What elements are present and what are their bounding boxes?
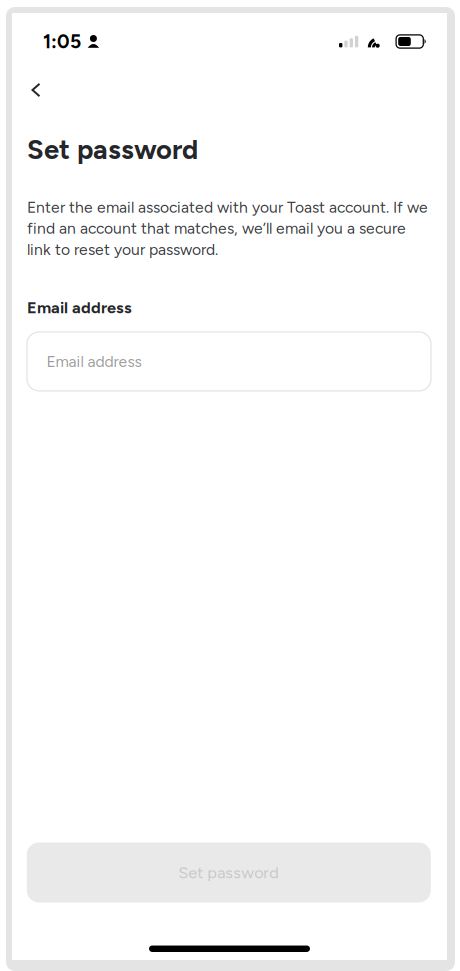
staticText: Set password (27, 133, 198, 166)
button[interactable]: Back (17, 70, 55, 110)
staticText: Set password (178, 863, 279, 882)
staticText: 1:05 (43, 30, 81, 53)
button[interactable]: Set password (27, 842, 431, 902)
staticText: Enter the email associated with your Toa… (27, 198, 428, 259)
staticText: Email address (46, 352, 141, 371)
staticText: Email address (27, 298, 132, 317)
